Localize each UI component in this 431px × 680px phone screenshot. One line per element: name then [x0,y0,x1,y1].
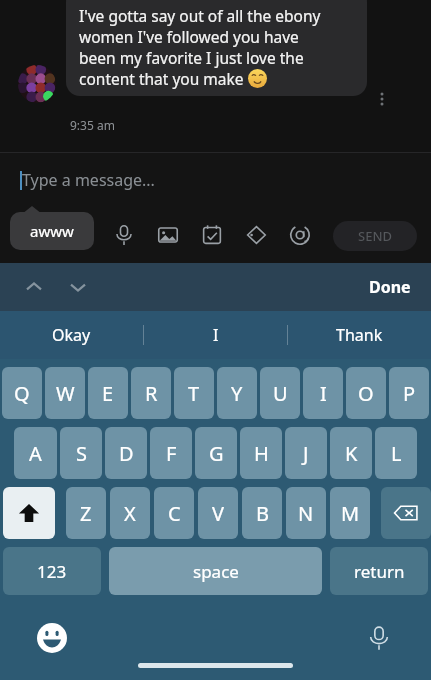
staticText: I [213,324,219,346]
button[interactable]: return [330,547,428,595]
staticText: U [273,380,288,407]
button[interactable]: Tip [234,213,278,257]
button[interactable]: G [195,427,237,479]
button[interactable]: I [144,311,287,359]
staticText: C [168,500,181,527]
button[interactable]: I [303,367,343,419]
button[interactable]: Y [217,367,257,419]
button[interactable]: F [150,427,192,479]
staticText: Type a message... [22,169,155,191]
staticText: S [76,440,87,467]
button[interactable]: O [346,367,386,419]
staticText: Z [80,500,92,527]
button[interactable]: E [88,367,128,419]
button[interactable]: Dictate [357,616,401,660]
staticText: D [119,440,134,467]
button[interactable]: awww [10,212,94,250]
button[interactable]: SEND [333,221,417,251]
staticText: SEND [358,227,392,245]
staticText: awww [30,221,74,241]
button[interactable]: T [174,367,214,419]
staticText: Y [231,380,243,407]
button[interactable]: Emoji [30,616,74,660]
button[interactable]: 123 [3,547,101,595]
staticText: Q [14,380,30,407]
staticText: Done [369,276,411,298]
button[interactable]: Profile picture [18,65,56,103]
button[interactable]: L [375,427,417,479]
button[interactable]: Previous field [12,265,56,309]
button[interactable]: I've gotta say out of all the ebony [66,0,367,96]
button[interactable]: Okay [0,311,143,359]
staticText: been my favorite I just love the [79,47,304,68]
button[interactable]: M [330,487,370,539]
button[interactable]: A [14,427,57,479]
button[interactable]: X [110,487,150,539]
button[interactable]: Done [363,268,417,306]
staticText: P [403,380,416,407]
button[interactable]: B [242,487,282,539]
staticText: V [212,500,224,527]
button[interactable]: P [389,367,429,419]
button[interactable]: R [131,367,171,419]
staticText: 9:35 am [70,117,115,133]
staticText: return [354,560,405,583]
button[interactable]: Voice message [102,213,146,257]
button[interactable]: W [45,367,85,419]
staticText: E [102,380,114,407]
button[interactable]: U [260,367,300,419]
staticText: R [145,380,158,407]
staticText: K [345,440,358,467]
button[interactable]: S [60,427,102,479]
button[interactable]: J [285,427,327,479]
staticText: N [298,500,314,527]
staticText: X [124,500,136,527]
button[interactable]: K [330,427,372,479]
button[interactable]: Shift [3,487,55,539]
button[interactable]: V [198,487,238,539]
staticText: J [303,440,309,467]
button[interactable]: D [105,427,147,479]
button[interactable]: C [154,487,194,539]
button[interactable]: Z [66,487,106,539]
button[interactable]: More options [369,86,395,112]
staticText: space [193,560,239,583]
button[interactable]: N [286,487,326,539]
staticText: W [56,380,75,407]
button[interactable]: Thank [288,311,431,359]
staticText: I [320,380,327,407]
staticText: M [341,500,360,527]
button[interactable]: Schedule [190,213,234,257]
button[interactable]: Backspace [381,487,431,539]
staticText: B [256,500,269,527]
staticText: O [358,380,374,407]
staticText: Thank [336,324,383,346]
staticText: L [391,440,402,467]
button[interactable]: Send image [146,213,190,257]
staticText: content that you make [79,68,248,89]
button[interactable]: space [109,547,322,595]
staticText: 123 [37,560,67,583]
button[interactable]: Mention [278,213,322,257]
staticText: G [209,440,224,467]
button[interactable]: Next field [56,265,100,309]
button[interactable]: H [240,427,282,479]
staticText: A [29,440,42,467]
staticText: I've gotta say out of all the ebony [79,5,321,26]
staticText: Okay [52,324,91,346]
staticText: women I've followed you have [79,26,299,47]
button[interactable]: Q [2,367,42,419]
staticText: F [166,440,177,467]
staticText: H [254,440,269,467]
staticText: T [188,380,200,407]
